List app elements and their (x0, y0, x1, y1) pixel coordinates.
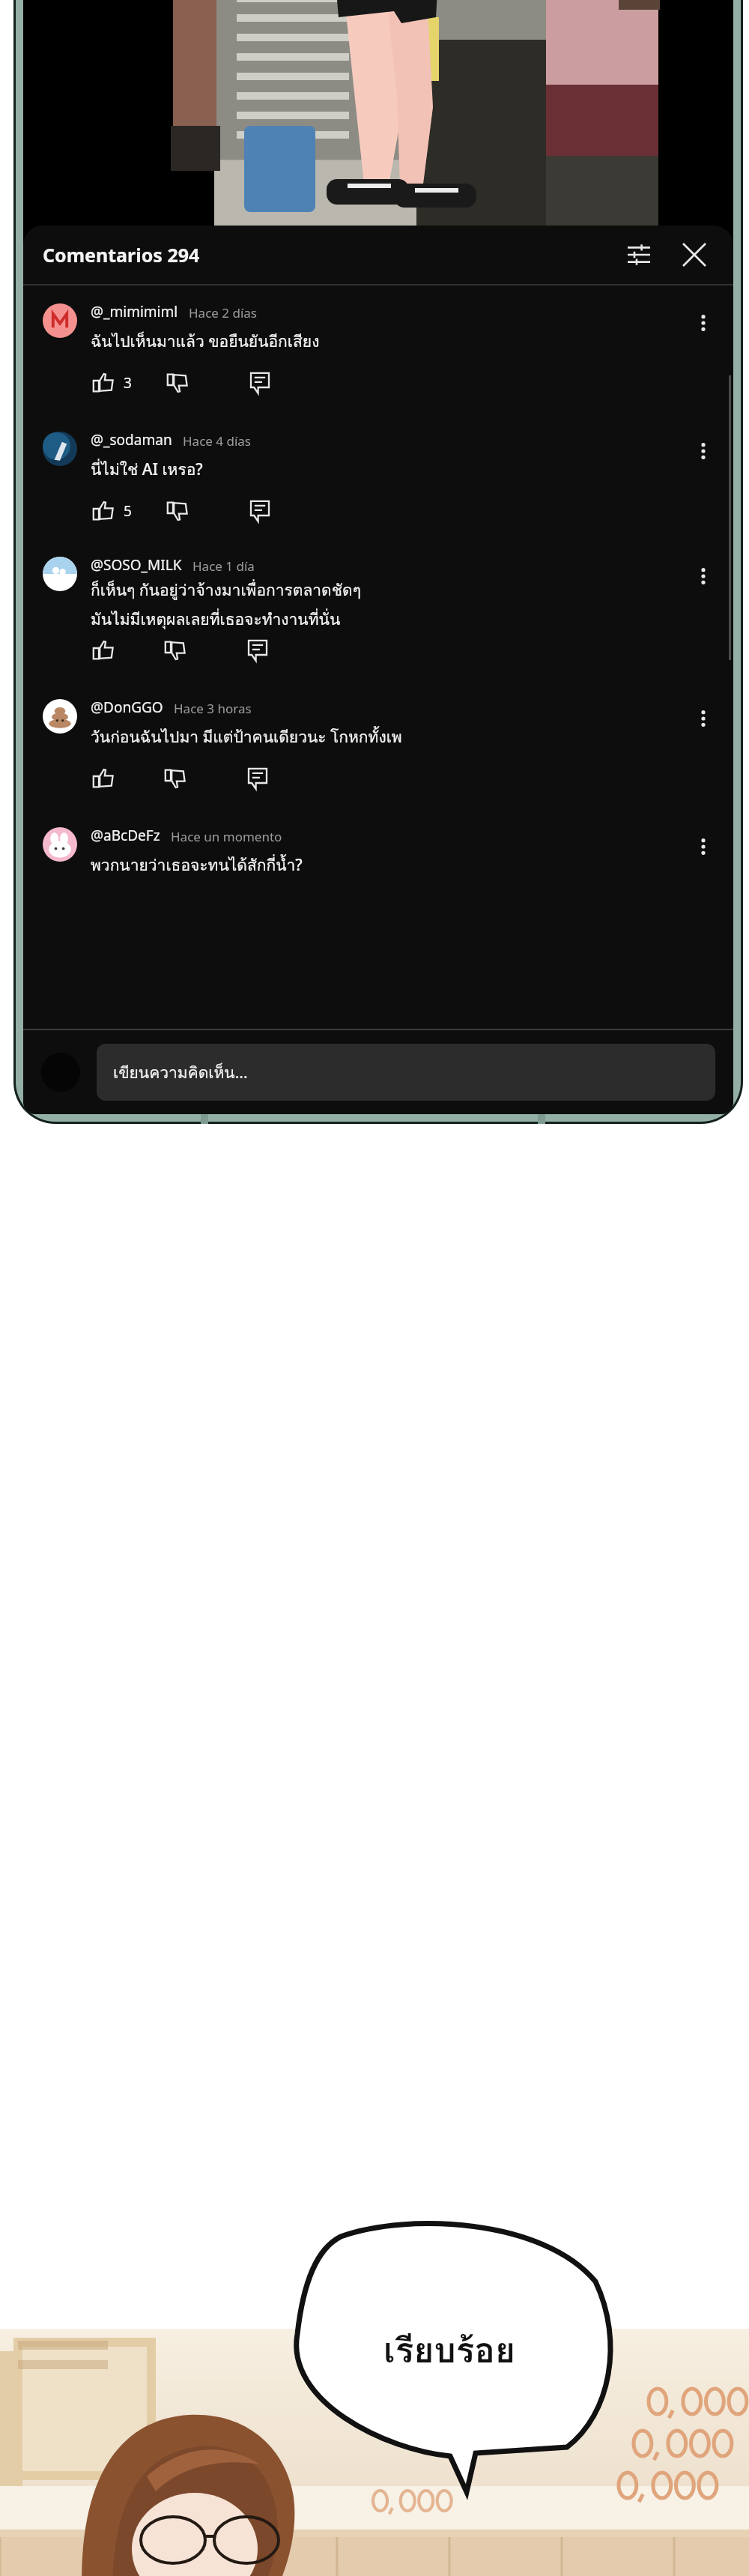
button[interactable]: Cerrar (675, 235, 714, 274)
button[interactable]: Me gusta (91, 638, 116, 663)
button[interactable]: Responder (245, 766, 270, 791)
button[interactable]: @_mimimiml (23, 285, 733, 414)
staticText: ฉันไปเห็นมาแล้ว ขอยืนยันอีกเสียง (91, 329, 320, 354)
button[interactable]: Me gusta (91, 370, 116, 396)
staticText: 5 (124, 501, 132, 521)
staticText: เขียนความคิดเห็น... (113, 1060, 248, 1085)
staticText: พวกนายว่าเธอจะทนได้สักกี่น้ำ? (91, 853, 303, 877)
button[interactable]: @aBcDeFz (23, 809, 733, 882)
staticText: Comentarios 294 (43, 242, 200, 267)
button[interactable]: Responder (247, 498, 273, 524)
staticText: 3 (124, 373, 132, 393)
button[interactable]: Tu perfil (41, 1053, 80, 1092)
button[interactable]: Me gusta (91, 766, 116, 791)
button[interactable]: @DonGGO (23, 681, 733, 809)
button[interactable]: Más opciones (687, 560, 720, 593)
button[interactable]: No me gusta (165, 370, 190, 396)
button[interactable]: Más opciones (687, 702, 720, 735)
staticText: @DonGGO (91, 698, 163, 717)
button[interactable]: Más opciones (687, 306, 720, 339)
staticText: Hace 1 día (192, 557, 255, 575)
button[interactable]: Filtrar comentarios (619, 235, 658, 274)
staticText: ก็เห็นๆ กันอยู่ว่าจ้างมาเพื่อการตลาดชัดๆ (91, 578, 361, 602)
staticText: @_mimimiml (91, 302, 178, 321)
button[interactable]: @_sodaman (23, 414, 733, 542)
button[interactable]: No me gusta (163, 638, 188, 663)
button[interactable]: Responder (247, 370, 273, 396)
button[interactable]: No me gusta (163, 766, 188, 791)
staticText: Hace un momento (171, 828, 282, 845)
button[interactable]: Me gusta (91, 498, 116, 524)
staticText: @_sodaman (91, 430, 172, 450)
staticText: Hace 2 días (189, 304, 257, 321)
staticText: Hace 4 días (183, 432, 251, 450)
button[interactable]: Más opciones (687, 435, 720, 468)
button[interactable]: @SOSO_MILK (23, 542, 733, 681)
button[interactable]: เขียนความคิดเห็น... (97, 1044, 715, 1101)
staticText: @aBcDeFz (91, 826, 160, 845)
staticText: @SOSO_MILK (91, 555, 182, 575)
button[interactable]: No me gusta (165, 498, 190, 524)
staticText: Hace 3 horas (174, 700, 252, 717)
button[interactable]: Más opciones (687, 830, 720, 863)
staticText: เรียบร้อย (337, 2323, 562, 2377)
staticText: มันไม่มีเหตุผลเลยที่เธอจะทำงานที่นั่น (91, 607, 341, 632)
staticText: วันก่อนฉันไปมา มีแต่ป้าคนเดียวนะ โกหกทั้… (91, 725, 402, 749)
staticText: นี่ไม่ใช่ AI เหรอ? (91, 457, 203, 482)
button[interactable]: Responder (245, 638, 270, 663)
